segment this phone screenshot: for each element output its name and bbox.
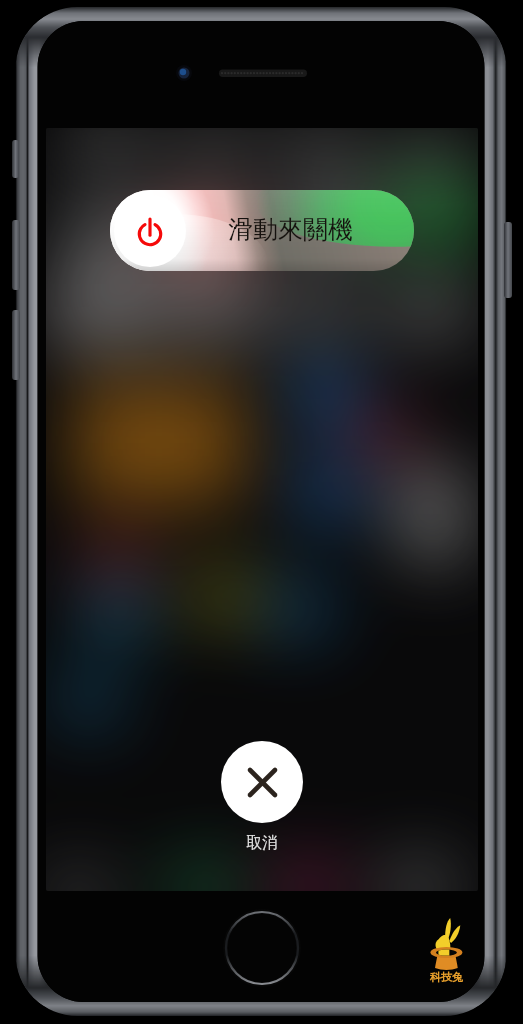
staticText: 滑動來關機 [228, 214, 353, 245]
staticText: 取消 [246, 833, 278, 853]
staticText: 科技兔 [430, 970, 463, 984]
button[interactable]: Slide to power off [110, 190, 414, 271]
button[interactable]: Cancel [221, 741, 303, 823]
